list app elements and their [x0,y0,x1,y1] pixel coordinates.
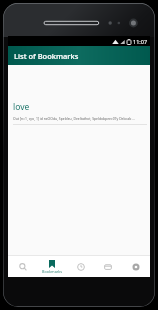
button[interactable]: List of Bookmarks [8,46,150,65]
staticText: List of Bookmarks [14,51,79,61]
button[interactable]: Settings [123,256,148,277]
button[interactable]: History [68,256,93,277]
button[interactable]: Search [10,256,35,277]
button[interactable]: love [8,101,150,125]
staticText: 11:07 [133,38,148,45]
staticText: Out [n=1, cyo, 1] id nxOOdu, Speldeu, De… [13,116,135,121]
staticText: Bookmarks [42,269,63,274]
button[interactable]: Reading list [95,256,120,277]
button[interactable]: Bookmarks [38,256,66,277]
staticText: love [13,101,30,113]
